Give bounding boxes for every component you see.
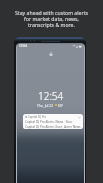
- staticText: Capital IQ Pro: [28, 115, 47, 119]
- staticText: Stay ahead with custom alerts for market…: [0, 9, 103, 29]
- staticText: 12:54: [19, 44, 28, 48]
- staticText: Capital IQ Pro Alerts: News · Your favor…: [25, 120, 81, 124]
- staticText: Capital IQ Pro Alerts: Econ, Acme News ·…: [25, 125, 81, 129]
- button[interactable]: Capital IQ Pro: [23, 114, 83, 129]
- staticText: Thu, Jul 22: [37, 103, 54, 107]
- other: Locked: [49, 52, 53, 56]
- staticText: 12:54: [38, 89, 64, 103]
- staticText: 60°: [58, 103, 64, 107]
